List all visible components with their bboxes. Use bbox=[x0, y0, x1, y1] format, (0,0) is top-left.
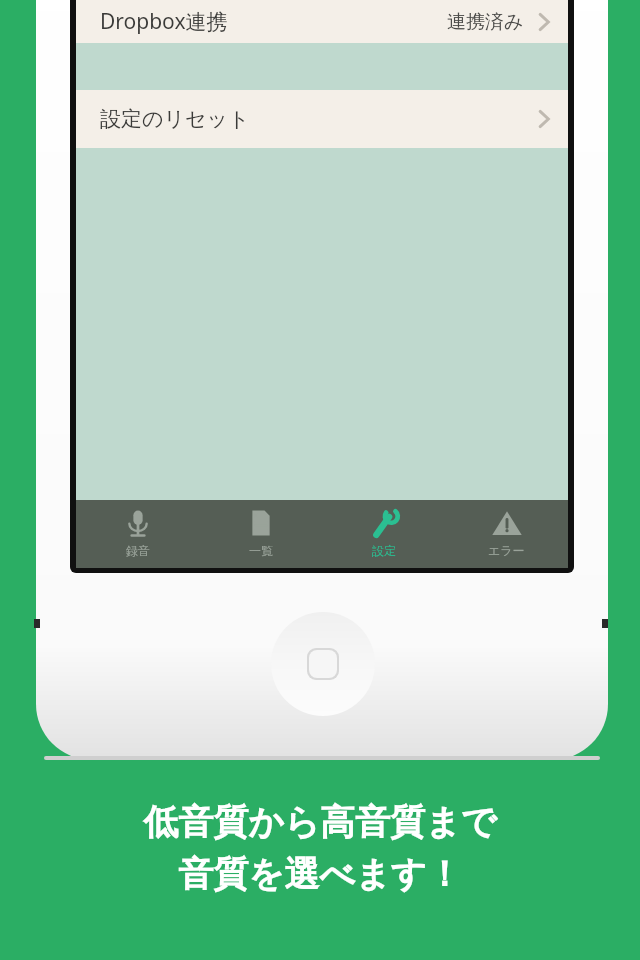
button[interactable]: 一覧 bbox=[199, 500, 322, 568]
button[interactable]: 設定のリセット bbox=[76, 90, 568, 148]
staticText: 設定のリセット bbox=[100, 106, 250, 132]
button[interactable]: 録音 bbox=[76, 500, 199, 568]
staticText: 連携済み bbox=[447, 10, 524, 34]
button[interactable]: Home bbox=[271, 612, 375, 716]
button[interactable]: エラー bbox=[445, 500, 568, 568]
staticText: 音質を選べます！ bbox=[178, 852, 462, 896]
staticText: 設定 bbox=[372, 543, 396, 558]
button[interactable]: Dropbox連携 bbox=[76, 0, 568, 43]
staticText: 一覧 bbox=[249, 543, 273, 558]
staticText: 低音質から高音質まで bbox=[143, 800, 497, 844]
button[interactable]: 設定 bbox=[322, 500, 445, 568]
staticText: Dropbox連携 bbox=[100, 7, 228, 36]
staticText: 録音 bbox=[126, 543, 150, 558]
staticText: エラー bbox=[488, 543, 525, 558]
